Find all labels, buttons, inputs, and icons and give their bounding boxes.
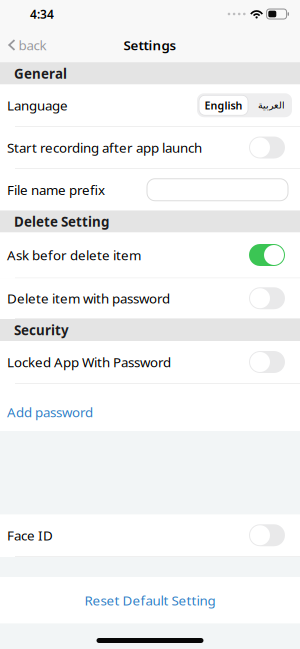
staticText: Reset Default Setting bbox=[84, 591, 215, 609]
button[interactable]: Language bbox=[197, 93, 292, 117]
button[interactable]: Start recording after app launch bbox=[0, 127, 300, 169]
staticText: Delete item with password bbox=[7, 289, 170, 307]
staticText: General bbox=[14, 65, 67, 82]
staticText: English bbox=[204, 98, 242, 112]
staticText: Security bbox=[14, 321, 69, 339]
button[interactable]: Language bbox=[0, 84, 300, 127]
button[interactable]: Face ID bbox=[0, 514, 300, 557]
staticText: Delete Setting bbox=[14, 213, 109, 230]
staticText: Settings bbox=[123, 36, 176, 54]
button[interactable]: Add password bbox=[0, 384, 300, 431]
button[interactable]: Delete item with password bbox=[0, 278, 300, 319]
button[interactable]: Reset Default Setting bbox=[0, 577, 300, 623]
button[interactable]: Ask befor delete item bbox=[0, 232, 300, 278]
staticText: Face ID bbox=[7, 526, 53, 544]
staticText: العربية bbox=[257, 100, 284, 111]
staticText: Ask befor delete item bbox=[7, 246, 141, 264]
staticText: back bbox=[18, 36, 46, 54]
staticText: Add password bbox=[7, 403, 93, 421]
staticText: Language bbox=[7, 96, 68, 114]
button[interactable]: Locked App With Password bbox=[0, 341, 300, 384]
staticText: Locked App With Password bbox=[7, 353, 171, 371]
button[interactable]: Back bbox=[0, 36, 46, 54]
staticText: 4:34 bbox=[30, 6, 54, 22]
staticText: Start recording after app launch bbox=[7, 139, 202, 156]
staticText: File name prefix bbox=[7, 181, 105, 199]
button[interactable]: File name prefix bbox=[0, 169, 300, 210]
